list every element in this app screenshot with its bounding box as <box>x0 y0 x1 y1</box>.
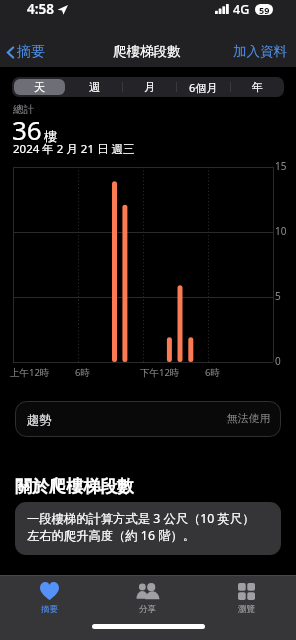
staticText: 下午12時 <box>140 366 180 379</box>
staticText: 10 <box>275 224 287 238</box>
staticText: 36 <box>12 112 42 147</box>
button[interactable]: 摘要 <box>0 582 98 613</box>
staticText: 瀏覽 <box>238 604 255 613</box>
staticText: 59 <box>259 4 270 15</box>
button[interactable]: 趨勢 <box>15 401 281 437</box>
staticText: 樓 <box>44 128 57 144</box>
button[interactable]: 6個月 <box>178 79 228 95</box>
staticText: 趨勢 <box>27 412 52 427</box>
staticText: 加入資料 <box>233 43 287 60</box>
staticText: 分享 <box>139 604 156 613</box>
button[interactable]: 月 <box>124 79 174 95</box>
staticText: 一段樓梯的計算方式是 3 公尺（10 英尺） 左右的爬升高度（約 16 階）。 <box>27 510 255 543</box>
button[interactable]: 天 <box>14 79 65 95</box>
staticText: 2024 年 2 月 21 日 週三 <box>13 141 135 157</box>
button[interactable]: 摘要 <box>0 39 48 65</box>
staticText: 5 <box>275 289 281 303</box>
staticText: 總計 <box>13 103 34 116</box>
staticText: 摘要 <box>41 604 58 613</box>
staticText: 上午12時 <box>10 366 50 379</box>
button[interactable]: 瀏覽 <box>197 582 296 613</box>
button[interactable]: 年 <box>232 79 282 95</box>
button[interactable]: 分享 <box>98 582 197 613</box>
staticText: 摘要 <box>17 43 45 61</box>
staticText: 天 <box>34 80 45 94</box>
staticText: 4G <box>233 1 250 18</box>
staticText: 關於爬樓梯段數 <box>15 476 134 497</box>
staticText: 0 <box>275 354 281 368</box>
staticText: 年 <box>252 80 263 94</box>
staticText: 4:58 <box>27 0 54 18</box>
staticText: 6時 <box>205 366 220 379</box>
staticText: 15 <box>275 159 287 173</box>
staticText: 無法使用 <box>227 412 271 426</box>
staticText: 爬樓梯段數 <box>113 43 181 60</box>
staticText: 6個月 <box>189 80 218 95</box>
staticText: 週 <box>89 80 100 94</box>
staticText: 6時 <box>75 366 90 379</box>
button[interactable]: 加入資料 <box>224 39 296 64</box>
button[interactable]: 週 <box>69 79 120 95</box>
staticText: 月 <box>144 80 155 94</box>
